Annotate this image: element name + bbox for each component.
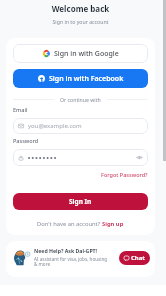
staticText: Welcome back [0,3,161,14]
staticText: Sign In [69,197,92,206]
button[interactable]: Sign in with Google [13,44,148,63]
staticText: Sign in with Facebook [49,74,124,84]
staticText: Or continue with [60,96,101,103]
staticText: Don't have an account? [37,220,102,228]
button[interactable]: Need Help? Ask Dal-GPT! [13,247,150,268]
staticText: AI assistant for visa, jobs, housing & m… [34,256,108,268]
button[interactable]: Forgot Password? [101,171,148,178]
button[interactable]: Sign In [13,193,148,210]
button[interactable]: you@example.com [18,118,143,134]
staticText: Need Help? Ask Dal-GPT! [34,247,98,254]
staticText: Email [13,106,28,113]
staticText: Sign in with Google [54,49,119,59]
button[interactable]: Chat [124,251,145,265]
button[interactable]: Show password [18,149,143,166]
staticText: Sign in to your account [0,18,161,25]
staticText: Password [13,137,39,144]
button[interactable]: Sign up [102,220,124,228]
button[interactable]: Sign in with Facebook [13,69,148,88]
staticText: Chat [131,254,145,262]
staticText: you@example.com [28,122,82,130]
button[interactable]: Show password [136,154,143,161]
